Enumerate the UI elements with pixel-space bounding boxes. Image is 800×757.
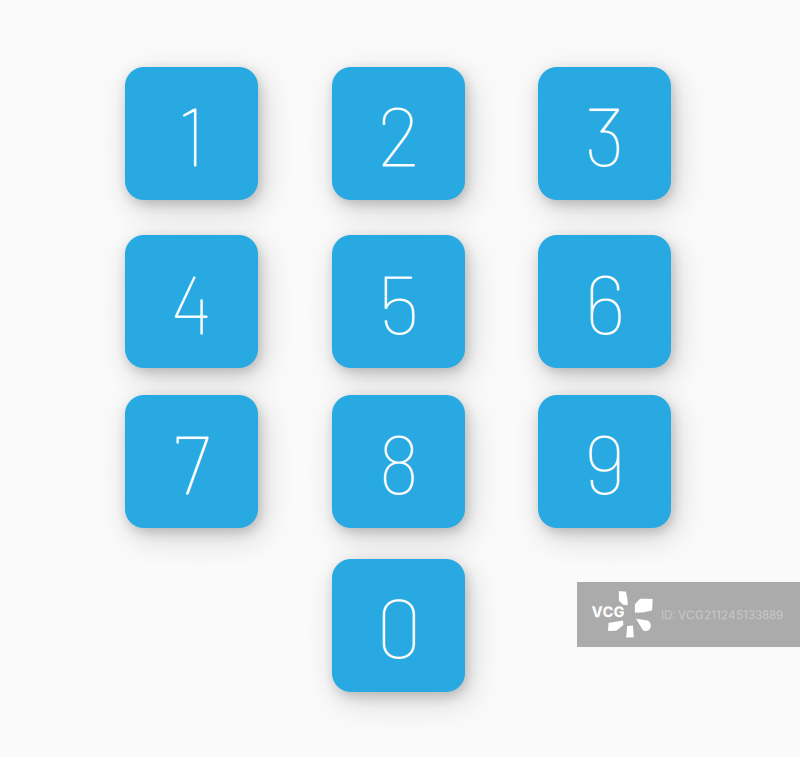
staticText: 2 — [377, 84, 420, 183]
staticText: 8 — [377, 412, 419, 511]
staticText: 7 — [172, 412, 210, 511]
staticText: 6 — [584, 252, 625, 351]
staticText: 9 — [583, 412, 626, 511]
button[interactable]: 7 — [125, 395, 258, 528]
button[interactable]: 2 — [332, 67, 465, 200]
button[interactable]: 1 — [125, 67, 258, 200]
button[interactable]: 4 — [125, 235, 258, 368]
staticText: 1 — [177, 84, 206, 183]
button[interactable]: 8 — [332, 395, 465, 528]
staticText: 4 — [170, 252, 213, 351]
staticText: 0 — [375, 576, 421, 675]
button[interactable]: 6 — [538, 235, 671, 368]
staticText: 5 — [378, 252, 419, 351]
button[interactable]: 0 — [332, 559, 465, 692]
button[interactable]: 3 — [538, 67, 671, 200]
staticText: 3 — [584, 84, 625, 183]
staticText: ID: VCG211245133889 — [661, 608, 783, 622]
button[interactable]: 5 — [332, 235, 465, 368]
staticText: VCG — [591, 603, 624, 621]
button[interactable]: 9 — [538, 395, 671, 528]
